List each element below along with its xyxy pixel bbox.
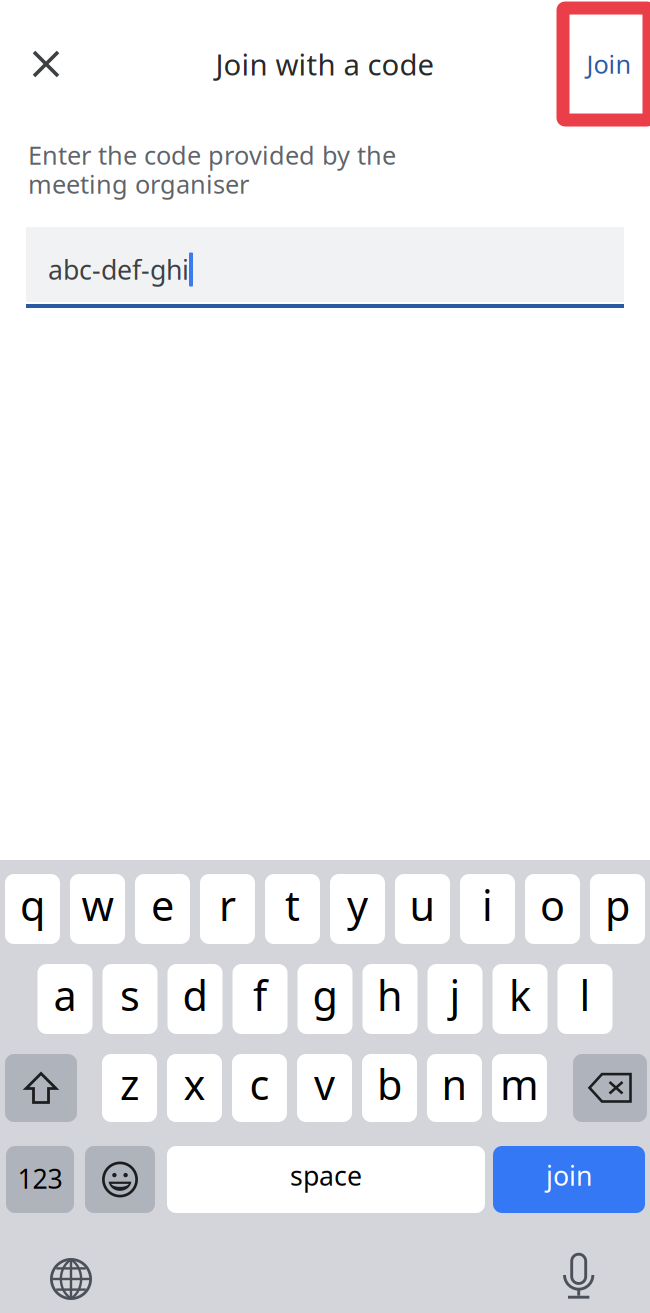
button[interactable]: Delete bbox=[573, 1054, 647, 1122]
staticText: i bbox=[482, 878, 493, 932]
staticText: Join bbox=[586, 47, 631, 81]
staticText: t bbox=[285, 878, 300, 932]
staticText: g bbox=[312, 968, 337, 1022]
staticText: c bbox=[249, 1057, 269, 1111]
staticText: r bbox=[219, 878, 236, 932]
button[interactable]: Emoji bbox=[85, 1146, 155, 1213]
staticText: m bbox=[500, 1057, 539, 1111]
button[interactable]: s bbox=[102, 964, 157, 1034]
staticText: o bbox=[540, 878, 565, 932]
staticText: a bbox=[53, 968, 76, 1022]
button[interactable]: space bbox=[167, 1146, 485, 1213]
staticText: b bbox=[377, 1057, 402, 1111]
button[interactable]: Switch keyboard bbox=[50, 1258, 92, 1300]
staticText: space bbox=[290, 1158, 362, 1193]
button[interactable]: join bbox=[493, 1146, 645, 1213]
staticText: x bbox=[183, 1057, 205, 1111]
staticText: q bbox=[20, 878, 45, 932]
staticText: k bbox=[509, 968, 531, 1022]
button[interactable]: Shift bbox=[5, 1054, 77, 1122]
staticText: j bbox=[449, 968, 460, 1022]
button[interactable]: k bbox=[492, 964, 547, 1034]
button[interactable]: v bbox=[297, 1054, 352, 1122]
button[interactable]: Close bbox=[14, 32, 78, 96]
staticText: s bbox=[120, 968, 140, 1022]
button[interactable]: z bbox=[102, 1054, 157, 1122]
staticText: y bbox=[347, 878, 368, 932]
button[interactable]: j bbox=[427, 964, 482, 1034]
staticText: h bbox=[377, 968, 403, 1022]
staticText: 123 bbox=[17, 1161, 62, 1196]
staticText: z bbox=[120, 1057, 139, 1111]
button[interactable]: Join bbox=[565, 32, 650, 96]
button[interactable]: h bbox=[362, 964, 417, 1034]
button[interactable]: l bbox=[557, 964, 612, 1034]
button[interactable]: r bbox=[200, 874, 255, 944]
button[interactable]: g bbox=[297, 964, 352, 1034]
button[interactable]: x bbox=[167, 1054, 222, 1122]
staticText: l bbox=[579, 968, 590, 1022]
button[interactable]: m bbox=[492, 1054, 547, 1122]
staticText: e bbox=[151, 878, 174, 932]
button[interactable]: 123 bbox=[6, 1146, 74, 1213]
staticText: join bbox=[546, 1158, 592, 1193]
button[interactable]: y bbox=[330, 874, 385, 944]
button[interactable]: p bbox=[590, 874, 645, 944]
staticText: Enter the code provided by the bbox=[28, 138, 396, 172]
button[interactable]: t bbox=[265, 874, 320, 944]
button[interactable]: f bbox=[232, 964, 287, 1034]
button[interactable]: d bbox=[167, 964, 222, 1034]
staticText: u bbox=[409, 878, 435, 932]
button[interactable]: e bbox=[135, 874, 190, 944]
button[interactable]: o bbox=[525, 874, 580, 944]
button[interactable]: b bbox=[362, 1054, 417, 1122]
button[interactable]: q bbox=[5, 874, 60, 944]
button[interactable]: u bbox=[395, 874, 450, 944]
button[interactable]: n bbox=[427, 1054, 482, 1122]
button[interactable]: a bbox=[37, 964, 92, 1034]
staticText: f bbox=[253, 968, 267, 1022]
staticText: Join with a code bbox=[215, 44, 434, 83]
button[interactable]: c bbox=[232, 1054, 287, 1122]
button[interactable]: w bbox=[70, 874, 125, 944]
staticText: n bbox=[441, 1057, 467, 1111]
staticText: p bbox=[605, 878, 630, 932]
staticText: meeting organiser bbox=[28, 167, 249, 201]
staticText: d bbox=[182, 968, 207, 1022]
staticText: v bbox=[314, 1057, 335, 1111]
button[interactable]: Dictation bbox=[563, 1253, 594, 1301]
staticText: w bbox=[81, 878, 113, 932]
button[interactable]: i bbox=[460, 874, 515, 944]
staticText: abc-def-ghi bbox=[48, 252, 189, 287]
